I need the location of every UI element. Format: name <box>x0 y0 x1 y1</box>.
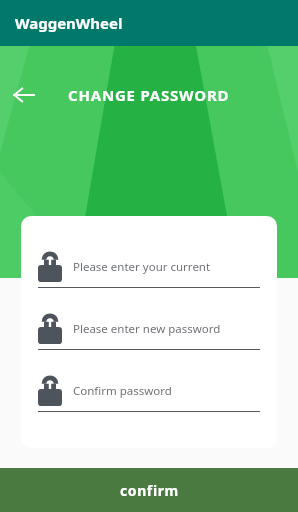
staticText: CHANGE PASSWORD <box>68 85 230 105</box>
button[interactable]: Confirm password <box>38 376 260 412</box>
staticText: Please enter new password <box>73 321 221 337</box>
staticText: WaggenWheel <box>15 13 123 33</box>
button[interactable]: Back <box>4 75 44 115</box>
staticText: Confirm password <box>73 383 172 399</box>
button[interactable]: confirm <box>0 468 298 512</box>
button[interactable]: Please enter new password <box>38 314 260 350</box>
staticText: Please enter your current password <box>73 259 260 275</box>
button[interactable]: Please enter your current password <box>38 252 260 288</box>
staticText: confirm <box>120 481 179 500</box>
